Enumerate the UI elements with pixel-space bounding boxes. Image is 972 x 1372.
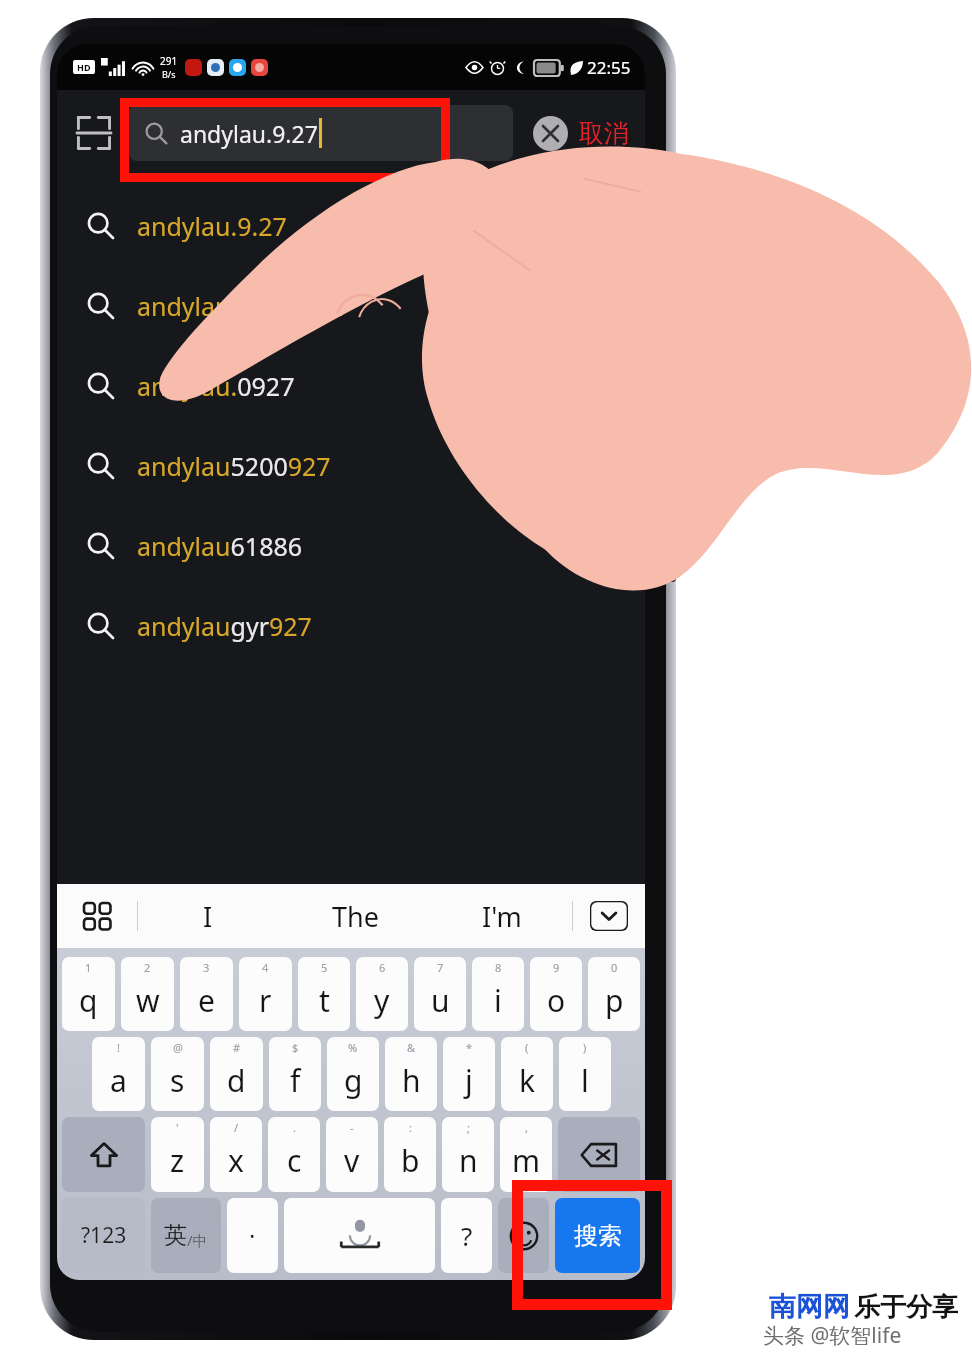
button[interactable]: ? [441, 1198, 492, 1273]
staticText: w [136, 980, 160, 1021]
staticText: - [350, 1120, 354, 1135]
button[interactable]: Scan QR code [67, 106, 121, 160]
button[interactable]: ; [442, 1117, 494, 1192]
staticText: a [110, 1060, 127, 1101]
button[interactable]: @ [151, 1037, 204, 1111]
button[interactable]: ( [501, 1037, 553, 1111]
button[interactable]: Space [284, 1198, 435, 1273]
staticText: p [605, 980, 624, 1021]
button[interactable]: & [385, 1037, 437, 1111]
button[interactable]: I [138, 884, 278, 948]
button[interactable]: Clear text [527, 110, 573, 156]
button[interactable]: ?123 [62, 1198, 145, 1273]
button[interactable]: Shift [62, 1117, 145, 1192]
button[interactable]: Emoji [498, 1198, 549, 1273]
staticText: ! [117, 1040, 120, 1055]
staticText: g [344, 1060, 363, 1101]
staticText: /中 [187, 1230, 208, 1250]
staticText: c [287, 1140, 302, 1181]
staticText: HD [77, 61, 91, 73]
button[interactable]: * [443, 1037, 495, 1111]
button[interactable]: Keyboard menu [57, 884, 137, 948]
button[interactable]: I'm [432, 884, 572, 948]
staticText: 英 [164, 1221, 187, 1250]
staticText: d [227, 1060, 246, 1101]
button[interactable]: andylau.0927 [57, 346, 645, 426]
button[interactable]: $ [269, 1037, 321, 1111]
button[interactable]: Hide keyboard [573, 884, 645, 948]
staticText: h [402, 1060, 421, 1101]
staticText: 乐于分享 [854, 1291, 958, 1324]
staticText: : [409, 1120, 412, 1135]
button[interactable]: 搜索 [555, 1198, 640, 1273]
staticText: t [319, 980, 330, 1021]
staticText: andylau61886 [137, 529, 303, 563]
button[interactable]: andylau09271314 [57, 266, 645, 346]
staticText: o [547, 980, 566, 1021]
button[interactable]: andylau.9.27 [57, 186, 645, 266]
staticText: q [79, 980, 98, 1021]
staticText: y [374, 980, 390, 1021]
staticText: 1 [85, 960, 92, 975]
staticText: andylau5200927 [137, 449, 331, 483]
staticText: ) [583, 1040, 587, 1055]
staticText: @ [173, 1040, 183, 1055]
button[interactable]: andylau5200927 [57, 426, 645, 506]
staticText: / [234, 1120, 239, 1135]
button[interactable]: andylau.9.27 [129, 105, 513, 161]
button[interactable]: andylau61886 [57, 506, 645, 586]
button[interactable]: 6 [356, 957, 408, 1031]
button[interactable]: 取消 [579, 118, 629, 149]
staticText: l [581, 1060, 589, 1101]
staticText: 7 [437, 960, 444, 975]
button[interactable]: Backspace [558, 1117, 640, 1192]
button[interactable]: - [326, 1117, 378, 1192]
staticText: b [401, 1140, 420, 1181]
button[interactable]: / [210, 1117, 262, 1192]
button[interactable]: · [227, 1198, 278, 1273]
button[interactable]: . [268, 1117, 320, 1192]
staticText: ( [525, 1040, 529, 1055]
staticText: , [525, 1120, 528, 1135]
staticText: · [249, 1219, 256, 1252]
staticText: 2 [144, 960, 151, 975]
staticText: s [170, 1060, 185, 1101]
staticText: u [431, 980, 450, 1021]
button[interactable]: 0 [588, 957, 640, 1031]
button[interactable]: 9 [530, 957, 582, 1031]
button[interactable]: The [278, 884, 432, 948]
staticText: % [348, 1040, 358, 1055]
button[interactable]: # [210, 1037, 263, 1111]
staticText: i [494, 980, 502, 1021]
staticText: z [170, 1140, 185, 1181]
staticText: $ [292, 1040, 299, 1055]
staticText: 9 [553, 960, 560, 975]
staticText: e [198, 980, 215, 1021]
staticText: * [466, 1040, 473, 1055]
staticText: 5 [321, 960, 328, 975]
button[interactable]: 1 [62, 957, 115, 1031]
staticText: The [332, 898, 379, 935]
button[interactable]: 2 [121, 957, 174, 1031]
button[interactable]: 4 [239, 957, 292, 1031]
staticText: f [290, 1060, 301, 1101]
staticText: 取消 [579, 118, 629, 149]
button[interactable]: % [327, 1037, 379, 1111]
staticText: I'm [482, 898, 522, 935]
staticText: r [259, 980, 272, 1021]
button[interactable]: : [384, 1117, 436, 1192]
button[interactable]: , [500, 1117, 552, 1192]
button[interactable]: 3 [180, 957, 233, 1031]
staticText: 南网网 [769, 1290, 850, 1324]
button[interactable]: 8 [472, 957, 524, 1031]
staticText: ? [461, 1218, 473, 1253]
button[interactable]: andylaugyr927 [57, 586, 645, 666]
button[interactable]: ' [151, 1117, 204, 1192]
button[interactable]: 5 [298, 957, 350, 1031]
staticText: 3 [203, 960, 210, 975]
button[interactable]: 7 [414, 957, 466, 1031]
staticText: andylaugyr927 [137, 609, 312, 643]
button[interactable]: ) [559, 1037, 611, 1111]
button[interactable]: Switch language [151, 1198, 221, 1273]
button[interactable]: ! [92, 1037, 145, 1111]
